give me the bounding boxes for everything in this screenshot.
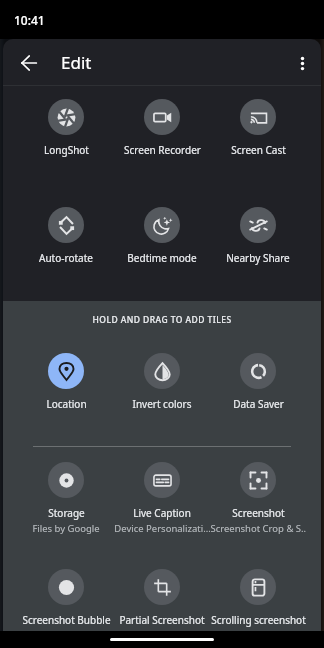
button[interactable]: Data Saver: [210, 353, 306, 411]
button[interactable]: Live Caption: [114, 462, 210, 535]
button[interactable]: Screen Cast: [210, 99, 306, 157]
staticText: Screen Cast: [231, 143, 286, 157]
staticText: Bedtime mode: [127, 251, 197, 265]
staticText: Storage: [48, 506, 85, 520]
staticText: Auto-rotate: [39, 251, 93, 265]
button[interactable]: Nearby Share: [210, 207, 306, 265]
button[interactable]: Screenshot: [210, 462, 306, 535]
staticText: Live Caption: [133, 506, 191, 520]
button[interactable]: Auto-rotate: [18, 207, 114, 265]
staticText: Files by Google: [32, 522, 100, 535]
staticText: HOLD AND DRAG TO ADD TILES: [3, 314, 321, 326]
staticText: LongShot: [44, 143, 89, 157]
button[interactable]: Invert colors: [114, 353, 210, 411]
staticText: 10:41: [14, 12, 45, 28]
button[interactable]: Screen Recorder: [114, 99, 210, 157]
staticText: Screenshot Crop & S…: [210, 629, 306, 642]
staticText: Screen Recorder: [124, 143, 201, 157]
staticText: Screenshot Crop & S…: [210, 522, 306, 535]
button[interactable]: Scrolling screenshot: [210, 569, 306, 642]
staticText: Screenshot: [232, 506, 285, 520]
button[interactable]: LongShot: [18, 99, 114, 157]
button[interactable]: Storage: [18, 462, 114, 535]
staticText: Screenshot Crop & S…: [18, 629, 114, 642]
staticText: Data Saver: [233, 397, 284, 411]
staticText: Nearby Share: [226, 251, 290, 265]
button[interactable]: Partial Screenshot: [114, 569, 210, 642]
button[interactable]: Location: [18, 353, 114, 411]
staticText: Invert colors: [132, 397, 192, 411]
staticText: Location: [46, 397, 87, 411]
button[interactable]: Bedtime mode: [114, 207, 210, 265]
staticText: Edit: [61, 51, 92, 74]
staticText: Scrolling screenshot: [211, 613, 306, 627]
staticText: Device Personalizati…: [114, 522, 210, 535]
staticText: Partial Screenshot: [119, 613, 205, 627]
staticText: Screenshot Crop & S…: [114, 629, 210, 642]
staticText: Screenshot Bubble: [22, 613, 111, 627]
button[interactable]: Screenshot Bubble: [18, 569, 114, 642]
button[interactable]: Back: [11, 45, 47, 81]
button[interactable]: More options: [284, 45, 320, 81]
